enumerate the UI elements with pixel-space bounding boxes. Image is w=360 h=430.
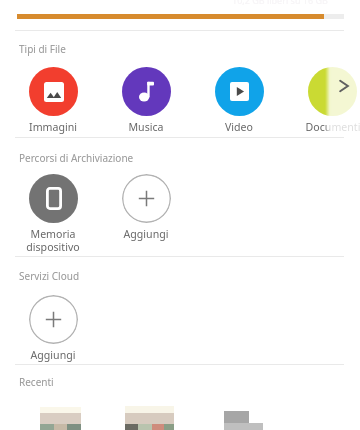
button[interactable]: More file types [325,58,360,136]
button[interactable] [224,411,263,430]
button[interactable] [29,295,78,344]
staticText: Recenti [19,375,54,389]
staticText: 10,2 GB liberi su 16 GB [232,0,328,6]
staticText: Servizi Cloud [19,269,80,283]
staticText: Tipi di File [19,42,66,56]
staticText: Aggiungi [7,348,99,362]
staticText: Immagini [7,120,99,134]
staticText: Video [193,120,285,134]
staticText: Musica [100,120,192,134]
button[interactable] [122,174,171,223]
staticText: Memoria dispositivo [7,227,99,254]
staticText: Documenti [287,120,360,134]
staticText: Percorsi di Archiviazione [19,151,134,165]
staticText: Aggiungi [100,227,192,241]
button[interactable] [125,406,174,430]
button[interactable] [40,407,81,430]
